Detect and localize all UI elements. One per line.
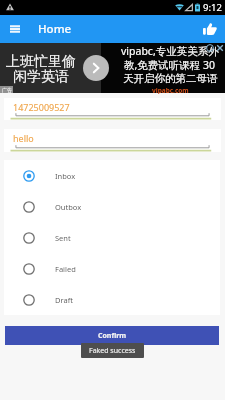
staticText: Faked success: [89, 346, 136, 356]
button[interactable]: Open navigation menu: [4, 15, 25, 43]
staticText: Failed: [55, 264, 76, 274]
button[interactable]: Open ad: [83, 55, 109, 81]
staticText: 上班忙里偷: [6, 53, 76, 71]
button[interactable]: Ad info: [205, 43, 215, 53]
staticText: Home: [38, 21, 72, 37]
staticText: Confirm: [98, 331, 127, 341]
staticText: Draft: [55, 295, 73, 305]
staticText: vipabc.com: [152, 86, 189, 94]
button[interactable]: Outbox: [4, 191, 220, 222]
button[interactable]: Confirm: [5, 326, 219, 345]
staticText: Outbox: [55, 202, 82, 212]
staticText: vipabc,专业英美系外: [121, 44, 219, 58]
staticText: hello: [13, 132, 34, 144]
staticText: 天开启你的第二母语: [123, 72, 218, 85]
button[interactable]: Inbox: [4, 160, 220, 191]
button[interactable]: hello: [4, 129, 221, 152]
staticText: 9:12: [203, 1, 222, 14]
button[interactable]: Close ad: [215, 43, 225, 53]
button[interactable]: Draft: [4, 284, 220, 315]
button[interactable]: Sent: [4, 222, 220, 253]
staticText: 14725009527: [13, 101, 70, 113]
staticText: 教,免费试听课程 30: [124, 58, 216, 72]
button[interactable]: Failed: [4, 253, 220, 284]
staticText: 闲学英语: [13, 68, 69, 86]
staticText: Inbox: [55, 171, 76, 181]
button[interactable]: 14725009527: [4, 98, 221, 120]
button[interactable]: Like: [195, 15, 225, 43]
staticText: 广告: [2, 87, 12, 93]
staticText: Sent: [55, 233, 71, 243]
